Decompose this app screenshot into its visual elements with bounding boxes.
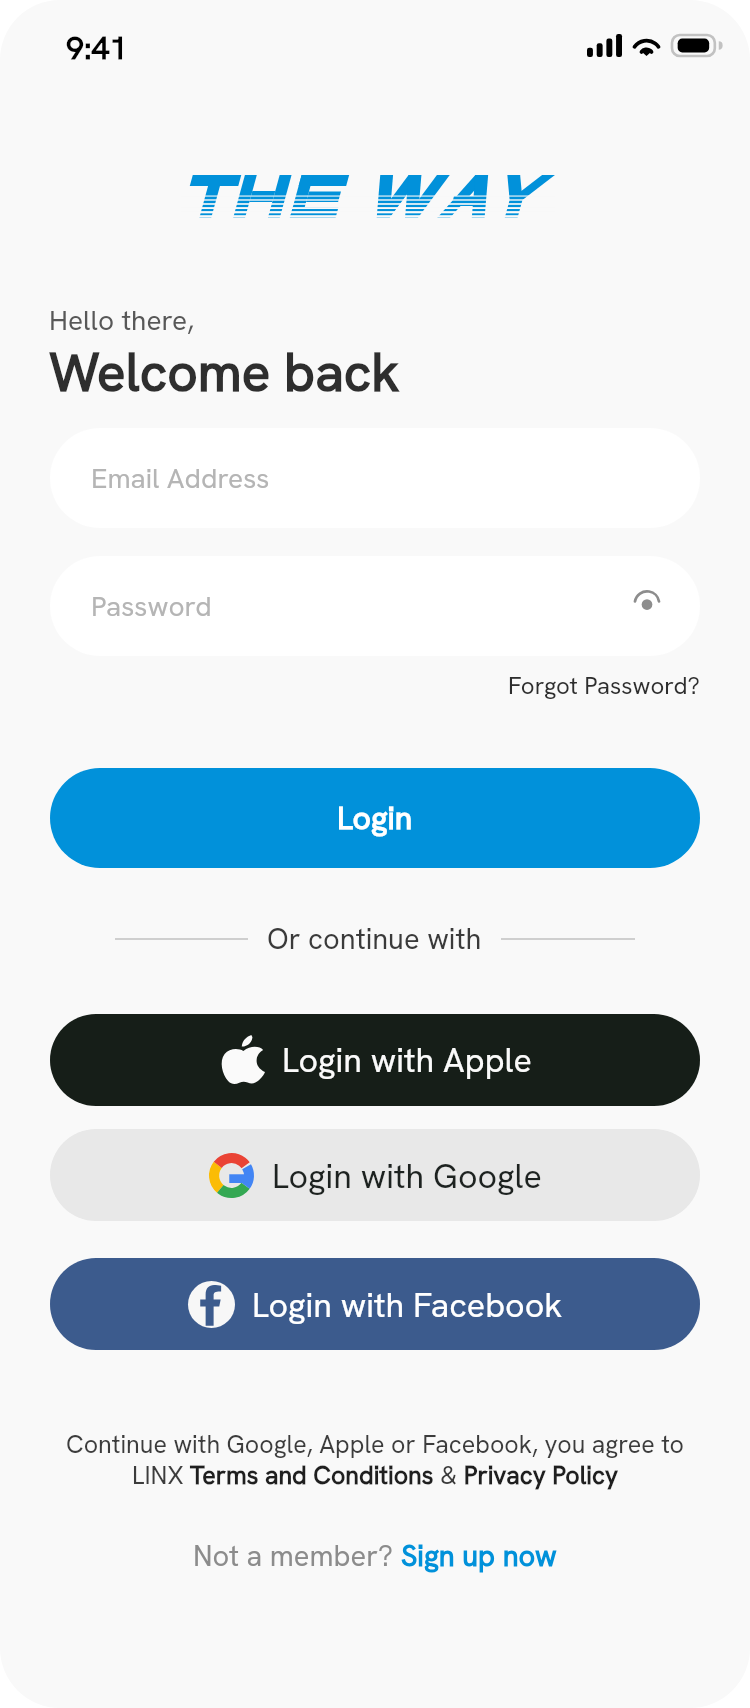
staticText: 9:41 bbox=[66, 27, 128, 69]
staticText: Not a member? bbox=[193, 1537, 401, 1575]
button[interactable]: Login bbox=[50, 768, 700, 868]
staticText: Email Address bbox=[91, 460, 270, 496]
staticText: Sign up now bbox=[401, 1537, 557, 1575]
staticText: Hello there, bbox=[49, 302, 194, 338]
button[interactable]: Login with Google bbox=[50, 1129, 700, 1221]
staticText: Login with Google bbox=[272, 1154, 542, 1198]
button[interactable]: Sign up now bbox=[401, 1537, 557, 1575]
staticText: Continue with Google, Apple or Facebook,… bbox=[30, 1428, 720, 1491]
button[interactable]: Show password bbox=[621, 580, 673, 632]
staticText: Password bbox=[91, 588, 212, 624]
staticText: Login bbox=[337, 797, 413, 839]
button[interactable]: Login with Apple bbox=[50, 1014, 700, 1106]
button[interactable]: Login with Facebook bbox=[50, 1258, 700, 1350]
staticText: Forgot Password? bbox=[508, 670, 700, 701]
button[interactable]: Forgot Password? bbox=[508, 670, 700, 701]
staticText: Login with Apple bbox=[282, 1038, 532, 1082]
button[interactable]: Password bbox=[50, 556, 700, 656]
button[interactable]: Email Address bbox=[50, 428, 700, 528]
staticText: Or continue with bbox=[267, 920, 482, 958]
staticText: Login with Facebook bbox=[252, 1283, 563, 1327]
staticText: Welcome back bbox=[49, 338, 400, 407]
